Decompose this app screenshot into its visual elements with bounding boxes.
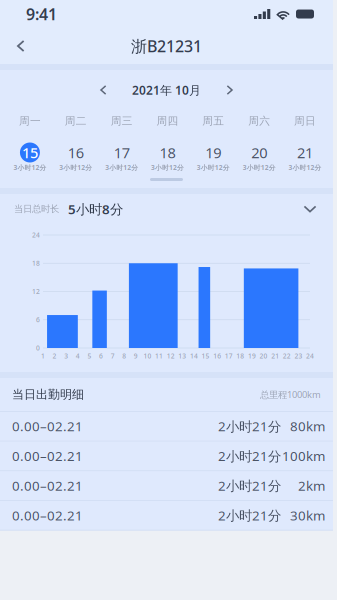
button[interactable]: 18 (145, 142, 190, 172)
staticText: 24 (306, 352, 314, 360)
staticText: 19 (205, 143, 221, 162)
staticText: 11 (155, 352, 163, 360)
staticText: 2小时21分 (218, 447, 281, 465)
staticText: 12 (32, 287, 40, 296)
staticText: 6 (99, 352, 103, 360)
button[interactable]: 15 (7, 142, 52, 172)
staticText: 17 (225, 352, 233, 360)
staticText: 23 (294, 352, 302, 360)
staticText: 18 (32, 259, 40, 268)
staticText: 9:41 (26, 3, 57, 25)
staticText: 17 (114, 143, 130, 162)
staticText: 18 (236, 352, 244, 360)
staticText: 3 (64, 352, 68, 360)
staticText: 周六 (248, 114, 270, 127)
staticText: 10 (143, 352, 151, 360)
staticText: 2小时21分 (218, 477, 281, 494)
staticText: 0.00–02.21 (12, 447, 83, 465)
staticText: 周五 (202, 114, 224, 127)
button[interactable]: 17 (99, 142, 144, 172)
staticText: 30km (290, 506, 325, 524)
button[interactable]: 21 (283, 142, 328, 172)
button[interactable]: 0.00–02.21 (0, 412, 333, 441)
staticText: 当日总时长 (14, 203, 59, 215)
button[interactable]: 16 (53, 142, 98, 172)
button[interactable]: Back (0, 28, 42, 64)
staticText: 13 (178, 352, 186, 360)
staticText: 周二 (65, 114, 87, 127)
button[interactable]: Previous month (83, 79, 123, 101)
staticText: 总里程1000km (260, 388, 321, 401)
button[interactable]: 20 (237, 142, 282, 172)
staticText: 21 (271, 352, 279, 360)
staticText: 2小时21分 (218, 506, 281, 524)
button[interactable]: Next month (209, 79, 249, 101)
staticText: 2km (298, 477, 325, 494)
button[interactable]: Collapse (293, 196, 327, 222)
staticText: 8 (122, 352, 126, 360)
staticText: 3小时12分 (289, 163, 322, 172)
staticText: 21 (297, 143, 313, 162)
staticText: 周四 (156, 114, 178, 127)
staticText: 16 (213, 352, 221, 360)
staticText: 3小时12分 (151, 163, 184, 172)
staticText: 周三 (111, 114, 133, 127)
staticText: 1 (41, 352, 45, 360)
staticText: 19 (248, 352, 256, 360)
staticText: 100km (282, 447, 325, 465)
button[interactable]: 0.00–02.21 (0, 441, 333, 470)
staticText: 15 (22, 143, 38, 162)
staticText: 5 (87, 352, 91, 360)
staticText: 9 (134, 352, 138, 360)
staticText: 20 (251, 143, 267, 162)
staticText: 12 (167, 352, 175, 360)
staticText: 浙B21231 (131, 35, 202, 57)
button[interactable]: 0.00–02.21 (0, 471, 333, 500)
staticText: 周日 (294, 114, 316, 127)
staticText: 18 (159, 143, 175, 162)
staticText: 3小时12分 (243, 163, 276, 172)
staticText: 2021年 10月 (132, 82, 201, 98)
button[interactable]: 0.00–02.21 (0, 501, 333, 530)
staticText: 14 (190, 352, 198, 360)
button[interactable]: 19 (191, 142, 236, 172)
staticText: 6 (36, 315, 40, 324)
staticText: 当日出勤明细 (12, 387, 84, 402)
staticText: 20 (260, 352, 268, 360)
staticText: 4 (76, 352, 80, 360)
staticText: 3小时12分 (13, 163, 46, 172)
staticText: 16 (68, 143, 84, 162)
staticText: 7 (111, 352, 115, 360)
staticText: 3小时12分 (59, 163, 92, 172)
staticText: 0.00–02.21 (12, 417, 83, 435)
staticText: 0.00–02.21 (12, 477, 83, 494)
staticText: 0.00–02.21 (12, 506, 83, 524)
staticText: 3小时12分 (105, 163, 138, 172)
staticText: 5小时8分 (68, 200, 123, 218)
staticText: 15 (201, 352, 209, 360)
staticText: 22 (283, 352, 291, 360)
staticText: 3小时12分 (197, 163, 230, 172)
staticText: 周一 (19, 114, 41, 127)
staticText: 0 (36, 344, 40, 352)
staticText: 80km (290, 417, 325, 435)
staticText: 24 (32, 231, 40, 239)
staticText: 2 (53, 352, 57, 360)
staticText: 2小时21分 (218, 417, 281, 435)
